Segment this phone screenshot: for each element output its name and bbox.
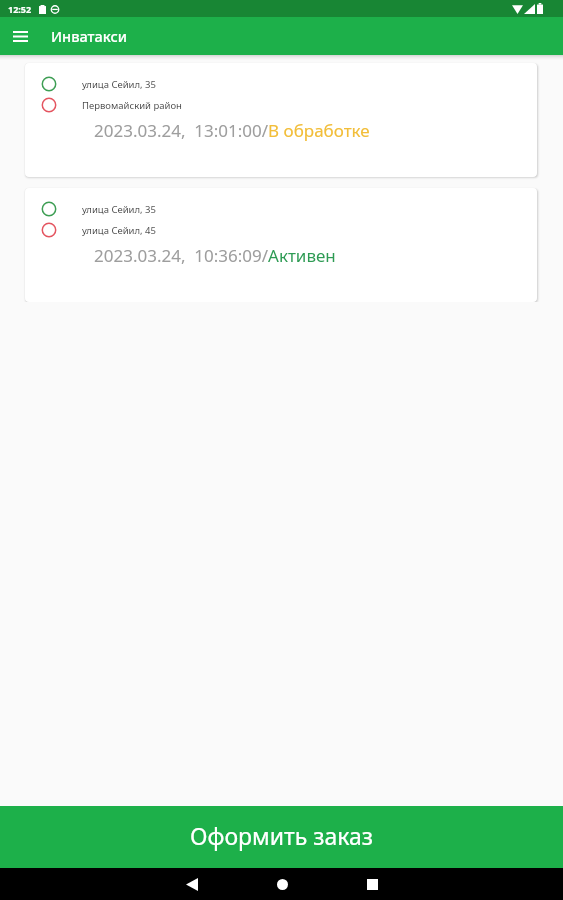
staticText: 2023.03.24, 13:01:00/В обработке <box>94 119 370 142</box>
staticText: Инватакси <box>51 26 128 46</box>
staticText: Оформить заказ <box>190 820 374 851</box>
staticText: улица Сейил, 45 <box>82 224 156 237</box>
button[interactable]: улица Сейил, 35 <box>25 188 537 302</box>
staticText: улица Сейил, 35 <box>82 203 156 216</box>
button[interactable]: улица Сейил, 35 <box>25 63 537 177</box>
button[interactable]: Menu <box>0 17 40 55</box>
button[interactable]: Back <box>176 868 208 900</box>
button[interactable]: Home <box>266 868 298 900</box>
button[interactable]: Recents <box>356 868 388 900</box>
staticText: 12:52 <box>8 3 32 15</box>
button[interactable]: Оформить заказ <box>0 806 563 868</box>
staticText: 2023.03.24, 10:36:09/Активен <box>94 244 336 267</box>
staticText: Первомайский район <box>82 99 182 112</box>
staticText: улица Сейил, 35 <box>82 78 156 91</box>
